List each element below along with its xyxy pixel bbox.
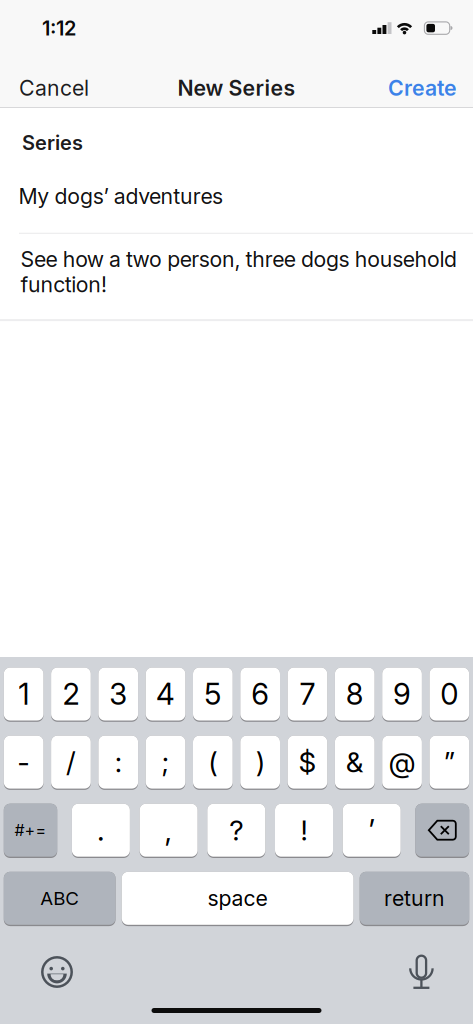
staticText: Series [22,131,83,155]
staticText: . [97,813,105,847]
staticText: ! [300,814,307,847]
staticText: 3 [109,677,127,711]
button[interactable]: @ [382,736,422,790]
button[interactable]: 7 [288,667,327,722]
button[interactable]: ” [429,736,469,790]
staticText: ’ [368,813,375,847]
staticText: #+= [14,821,46,840]
button[interactable]: ? [207,804,265,858]
button[interactable]: $ [288,736,327,790]
button[interactable]: My dogs’ adventures [0,155,473,209]
button[interactable]: 2 [51,667,91,722]
button[interactable]: 5 [193,667,233,722]
staticText: & [346,746,364,779]
button[interactable]: 9 [382,667,422,722]
staticText: 6 [251,677,269,711]
button[interactable]: 8 [335,667,375,722]
button[interactable]: space [122,872,353,926]
button[interactable]: ( [193,736,233,790]
staticText: 5 [204,677,221,711]
button[interactable]: ) [240,736,280,790]
staticText: ABC [40,887,79,909]
staticText: , [165,813,173,847]
button[interactable]: 4 [146,667,185,722]
staticText: space [208,886,268,911]
button[interactable]: - [4,736,43,790]
button[interactable]: return [360,872,469,926]
button[interactable]: ABC [4,872,115,926]
button[interactable]: Cancel [0,75,89,101]
staticText: ; [162,746,170,779]
staticText: ” [444,746,455,779]
staticText: Cancel [19,75,89,101]
button[interactable]: & [335,736,375,790]
staticText: 1 [18,677,29,711]
staticText: $ [298,746,316,779]
button[interactable]: ; [146,736,185,790]
button[interactable]: , [140,804,198,858]
staticText: : [115,746,122,779]
staticText: See how a two person, three dogs househo… [20,247,457,297]
staticText: ) [256,746,265,779]
staticText: 9 [393,677,411,711]
staticText: @ [389,746,416,779]
button[interactable]: #+= [4,804,57,858]
button[interactable]: Dictate [406,954,436,989]
button[interactable]: : [98,736,138,790]
button[interactable]: Emoji [41,956,73,988]
staticText: 1:12 [42,16,76,40]
staticText: 2 [62,677,79,711]
staticText: / [66,746,76,779]
button[interactable]: 6 [240,667,280,722]
button[interactable]: 0 [429,667,469,722]
staticText: 7 [299,677,315,711]
button[interactable]: Create [388,75,473,101]
staticText: 4 [156,677,175,711]
staticText: - [17,746,30,779]
button[interactable]: / [51,736,91,790]
staticText: Create [388,75,457,101]
button[interactable]: . [72,804,130,858]
button[interactable]: 1 [4,667,43,722]
button[interactable]: See how a two person, three dogs househo… [0,234,473,297]
button[interactable]: 3 [98,667,138,722]
button[interactable]: ! [275,804,333,858]
staticText: My dogs’ adventures [18,184,223,209]
button[interactable]: ’ [343,804,401,858]
button[interactable]: Delete [415,804,469,858]
staticText: 0 [440,677,458,711]
staticText: return [384,886,445,911]
staticText: New Series [177,75,295,101]
staticText: ( [208,746,217,779]
staticText: ? [229,814,243,847]
staticText: 8 [346,677,364,711]
